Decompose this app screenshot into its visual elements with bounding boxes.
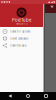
staticText: Select Language: [10, 37, 28, 40]
button[interactable]: Recent apps: [37, 92, 55, 100]
button[interactable]: Select Language: [0, 35, 43, 42]
button[interactable]: Share this app: [0, 42, 43, 49]
button[interactable]: Back: [1, 92, 19, 100]
staticText: Check for update: [10, 30, 30, 33]
staticText: Share this app: [10, 44, 27, 47]
button[interactable]: Home: [19, 92, 37, 100]
staticText: PodTube: [12, 17, 31, 23]
button[interactable]: Check for update: [0, 28, 43, 35]
staticText: Version 1.0: [16, 23, 27, 25]
button[interactable]: Cast: [49, 4, 54, 9]
